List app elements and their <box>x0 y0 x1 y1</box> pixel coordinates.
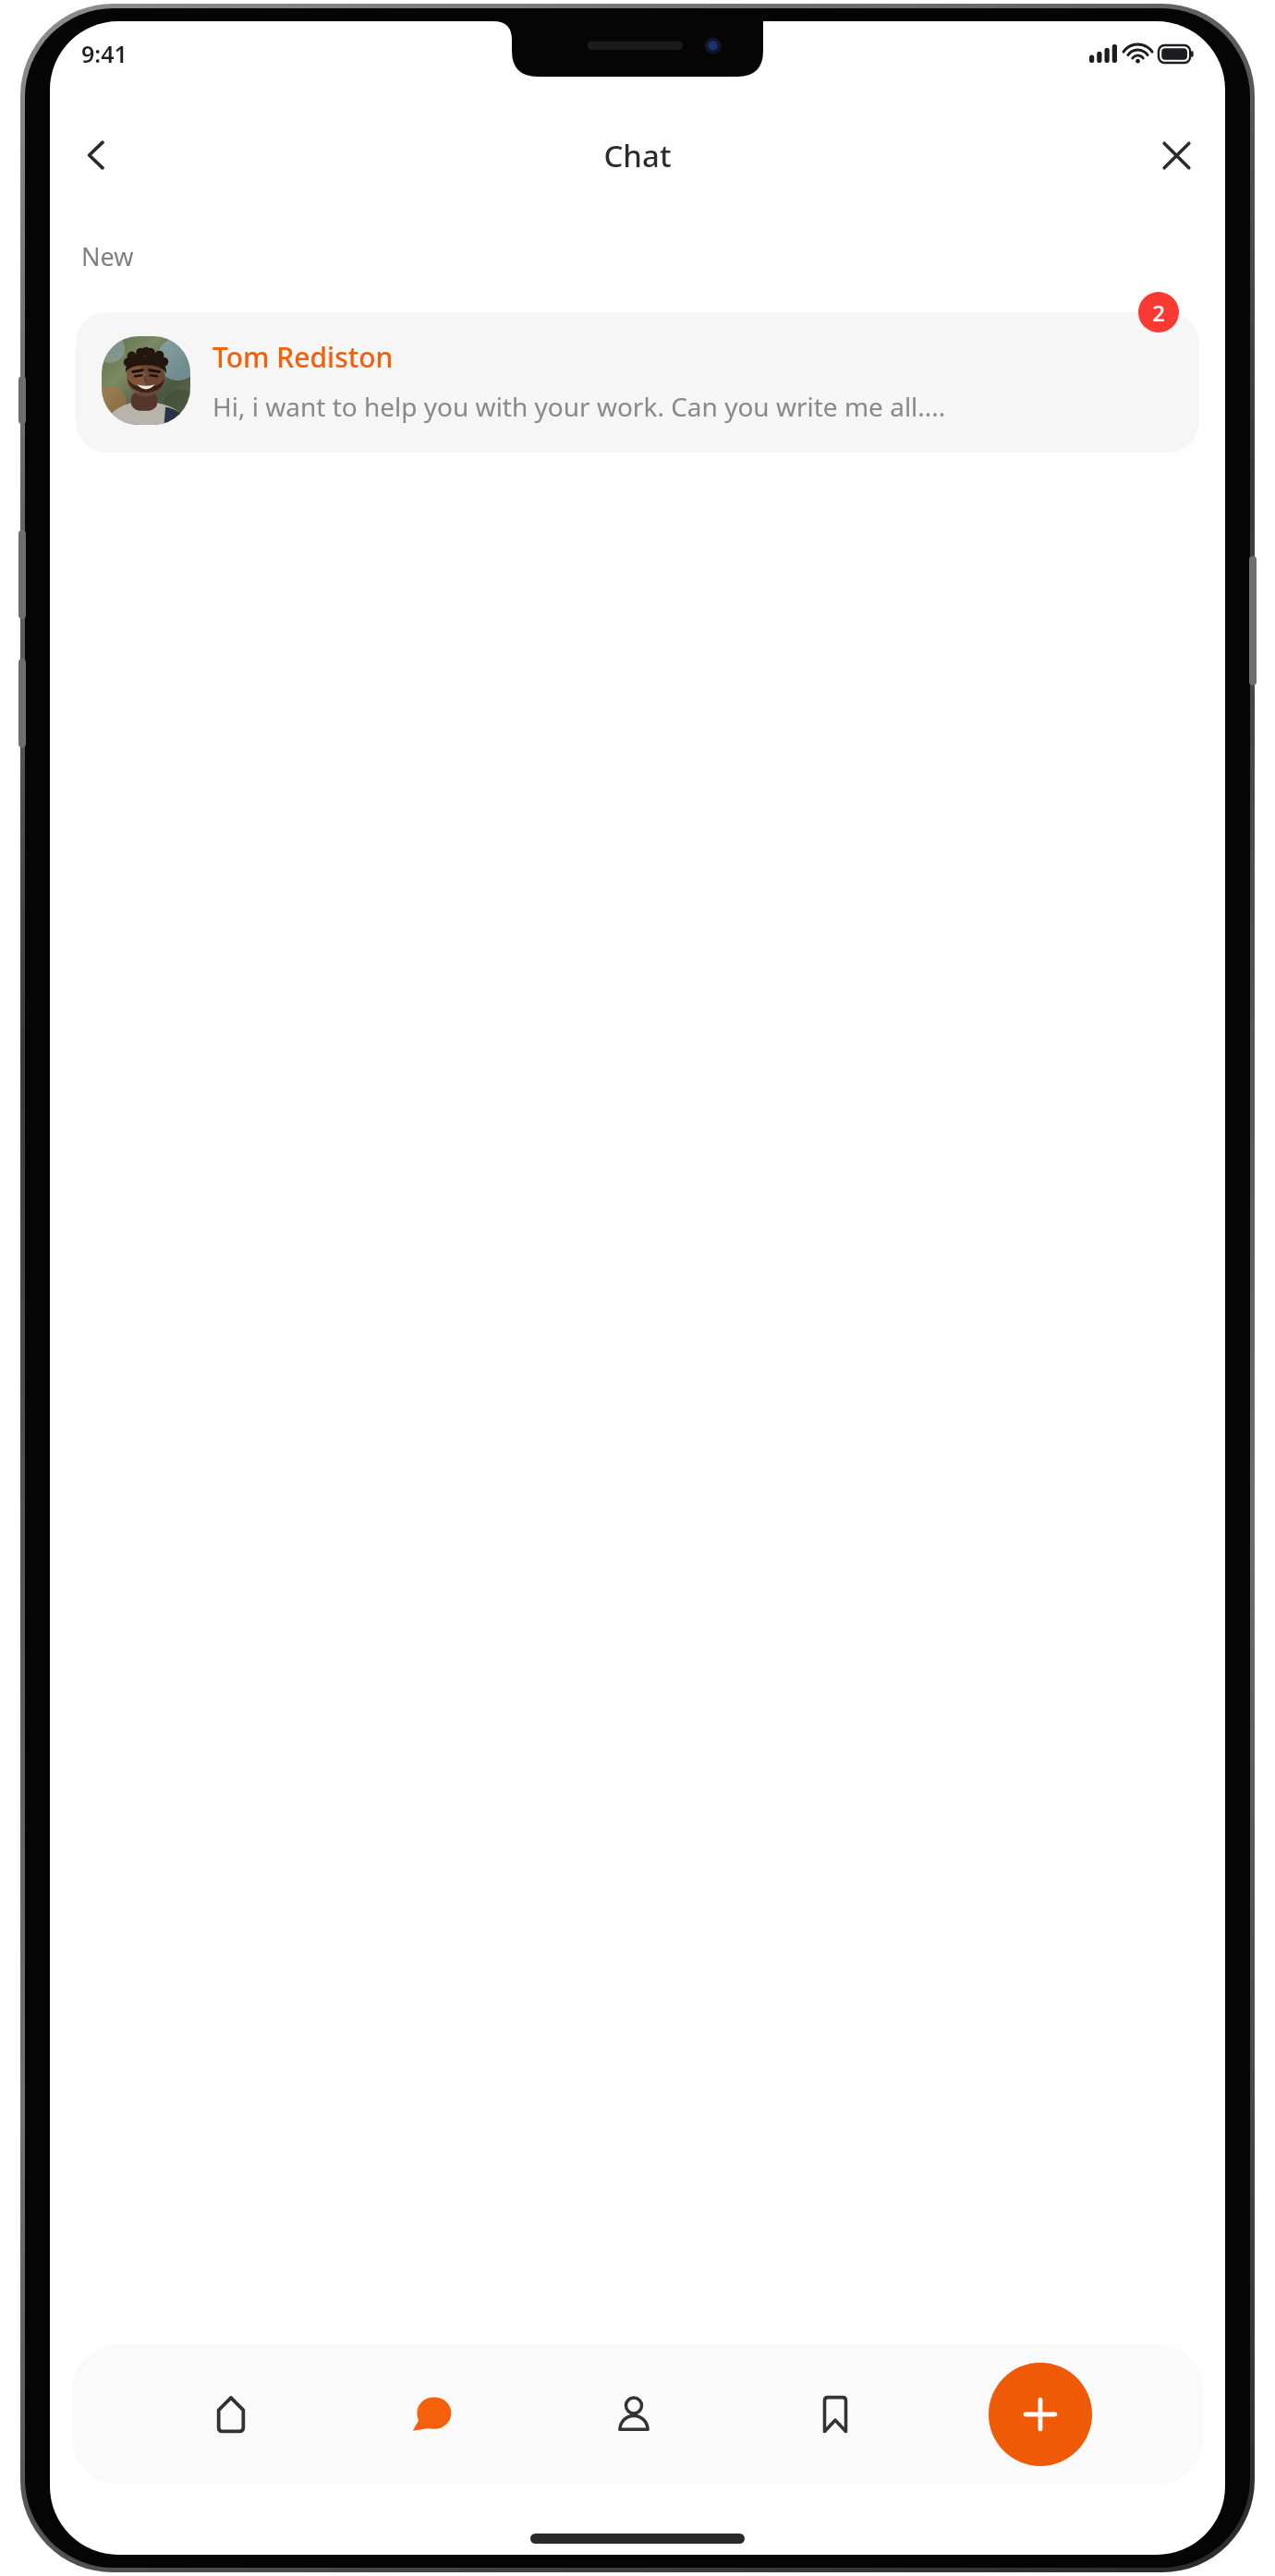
button[interactable]: Add <box>989 2363 1092 2466</box>
button[interactable]: Tom Rediston <box>76 312 1199 453</box>
staticText: Hi, i want to help you with your work. C… <box>212 389 946 424</box>
staticText: Chat <box>603 135 672 176</box>
button[interactable]: Profile <box>586 2363 682 2466</box>
button[interactable]: Home <box>183 2363 279 2466</box>
staticText: New <box>81 239 134 273</box>
button[interactable]: Chat <box>384 2363 480 2466</box>
staticText: 9:41 <box>81 38 127 69</box>
button[interactable]: Back <box>68 127 126 184</box>
staticText: Tom Rediston <box>212 338 394 376</box>
staticText: 2 <box>1152 297 1165 328</box>
button[interactable]: Close <box>1147 127 1205 184</box>
button[interactable]: Saved <box>787 2363 883 2466</box>
